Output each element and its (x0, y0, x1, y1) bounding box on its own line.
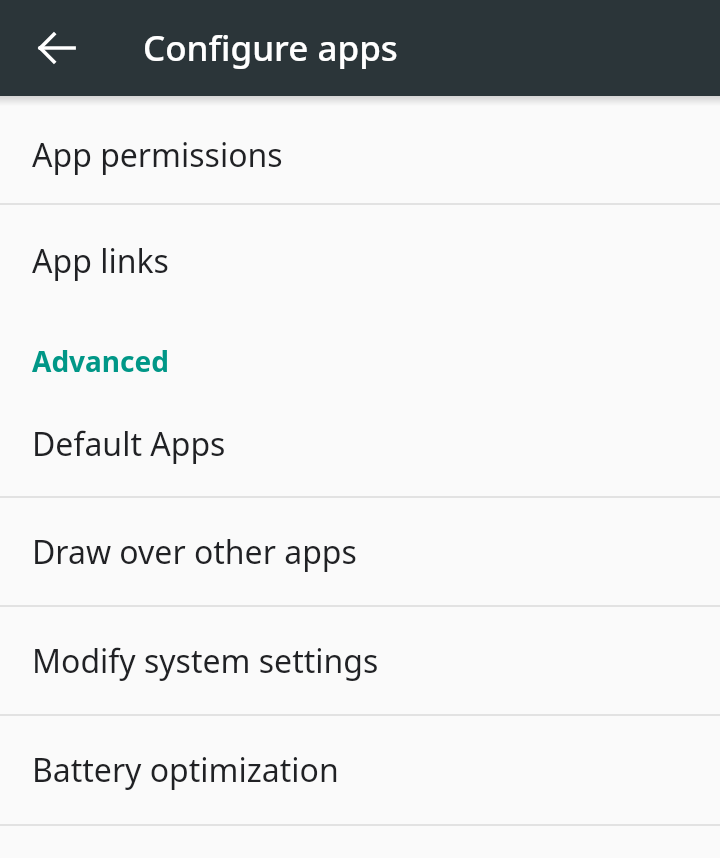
button[interactable]: Back (21, 12, 93, 84)
staticText: Default Apps (32, 422, 226, 466)
button[interactable]: Modify system settings (0, 607, 720, 714)
button[interactable]: App links (0, 205, 720, 316)
button[interactable]: Draw over other apps (0, 498, 720, 605)
button[interactable]: Default Apps (0, 392, 720, 496)
staticText: Advanced (32, 342, 169, 380)
button[interactable]: Battery optimization (0, 716, 720, 824)
staticText: Modify system settings (32, 639, 379, 683)
staticText: Battery optimization (32, 748, 339, 792)
button[interactable]: App permissions (0, 106, 720, 203)
staticText: Configure apps (143, 24, 398, 72)
staticText: Draw over other apps (32, 530, 357, 574)
staticText: App permissions (32, 133, 283, 177)
staticText: App links (32, 239, 169, 283)
